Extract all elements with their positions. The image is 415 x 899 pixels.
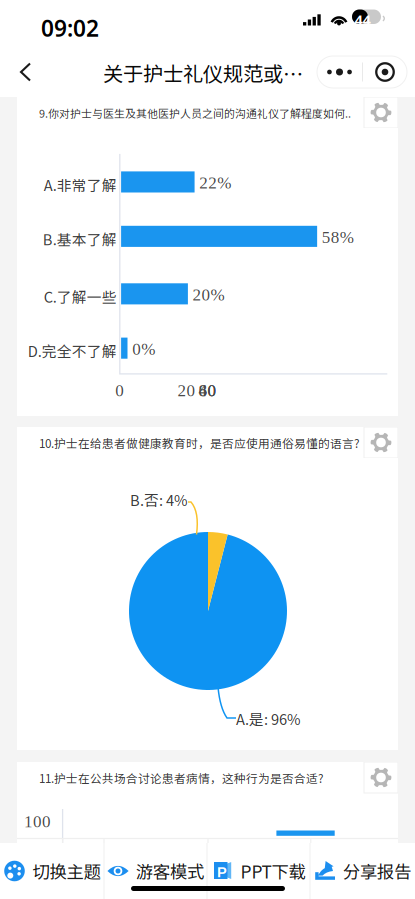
staticText: C.了解一些 bbox=[44, 286, 117, 307]
staticText: 切换主题 bbox=[32, 858, 100, 884]
button[interactable]: Settings bbox=[364, 97, 398, 128]
staticText: 10.护士在给患者做健康教育时，是否应使用通俗易懂的语言? bbox=[39, 435, 360, 451]
button[interactable]: More bbox=[317, 56, 407, 88]
staticText: D.完全不了解 bbox=[28, 340, 117, 361]
staticText: PPT下载 bbox=[240, 858, 305, 884]
staticText: B.否: 4% bbox=[130, 489, 188, 510]
staticText: 40 bbox=[198, 381, 216, 400]
staticText: 20% bbox=[193, 285, 225, 304]
staticText: 0% bbox=[132, 340, 155, 358]
button[interactable]: 切换主题 bbox=[0, 843, 103, 899]
staticText: 09:02 bbox=[41, 13, 99, 43]
staticText: A.是: 96% bbox=[236, 708, 301, 729]
staticText: 游客模式 bbox=[136, 858, 204, 884]
staticText: 0 bbox=[115, 381, 124, 400]
staticText: 分享报告 bbox=[343, 858, 411, 884]
button[interactable]: 分享报告 bbox=[310, 843, 414, 899]
staticText: 11.护士在公共场合讨论患者病情，这种行为是否合适? bbox=[39, 770, 323, 786]
staticText: 44 bbox=[354, 10, 370, 29]
button[interactable]: Settings bbox=[364, 427, 398, 458]
staticText: 60 bbox=[198, 381, 216, 400]
staticText: 关于护士礼仪规范或… bbox=[103, 58, 303, 87]
button[interactable]: Settings bbox=[364, 762, 398, 793]
staticText: 58% bbox=[322, 228, 354, 247]
staticText: 20 bbox=[178, 381, 196, 400]
staticText: A.非常了解 bbox=[44, 174, 117, 195]
button[interactable]: 游客模式 bbox=[104, 843, 206, 899]
button[interactable]: Back bbox=[9, 53, 43, 91]
staticText: 22% bbox=[199, 173, 231, 192]
staticText: 80 bbox=[198, 381, 216, 400]
button[interactable]: P bbox=[207, 843, 309, 899]
staticText: P bbox=[217, 864, 227, 880]
staticText: 9.你对护士与医生及其他医护人员之间的沟通礼仪了解程度如何.. bbox=[39, 105, 351, 121]
staticText: B.基本了解 bbox=[43, 228, 117, 249]
staticText: 100 bbox=[24, 812, 51, 831]
